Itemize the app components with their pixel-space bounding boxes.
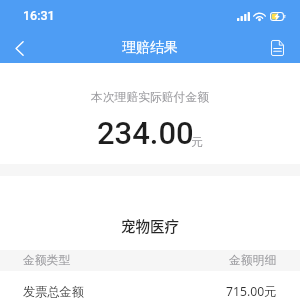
staticText: 16:31 [23, 8, 55, 23]
staticText: 715.00元 [226, 283, 277, 300]
staticText: 234.00 [97, 115, 194, 151]
button[interactable]: Back [0, 29, 38, 67]
button[interactable]: Claim document [260, 29, 294, 67]
staticText: 宠物医疗 [121, 215, 179, 236]
staticText: 金额明细 [229, 253, 277, 268]
staticText: 本次理赔实际赔付金额 [91, 90, 209, 105]
staticText: 理赔结果 [122, 39, 178, 57]
staticText: 元 [191, 135, 203, 149]
button[interactable]: 发票总金额 [0, 271, 300, 300]
staticText: 发票总金额 [23, 284, 84, 299]
staticText: 金额类型 [23, 253, 71, 268]
